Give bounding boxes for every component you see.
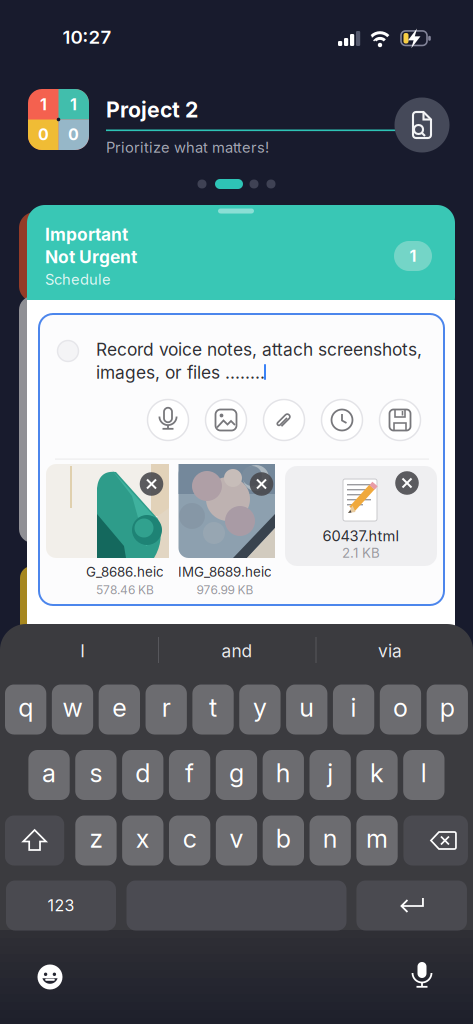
staticText: 60437.html bbox=[322, 527, 399, 545]
button[interactable]: I bbox=[23, 632, 143, 670]
button[interactable]: Attach image bbox=[205, 399, 246, 440]
staticText: 976.99 KB bbox=[196, 583, 253, 597]
staticText: q bbox=[18, 693, 33, 722]
staticText: r bbox=[162, 693, 171, 722]
button[interactable]: d bbox=[122, 750, 163, 800]
staticText: images, or files ........ bbox=[96, 362, 265, 382]
staticText: w bbox=[62, 693, 82, 722]
staticText: Schedule bbox=[45, 271, 111, 288]
staticText: 123 bbox=[47, 896, 74, 915]
staticText: b bbox=[276, 824, 291, 853]
staticText: Important bbox=[45, 224, 128, 244]
button[interactable]: m bbox=[356, 815, 398, 865]
button[interactable]: i bbox=[333, 684, 374, 734]
staticText: l bbox=[421, 758, 427, 788]
staticText: d bbox=[135, 758, 150, 788]
button[interactable]: l bbox=[403, 750, 444, 800]
staticText: 2.1 KB bbox=[342, 545, 380, 561]
staticText: g bbox=[229, 758, 244, 788]
button[interactable]: Record voice note bbox=[147, 399, 188, 440]
button[interactable]: u bbox=[286, 684, 327, 734]
button[interactable]: y bbox=[239, 684, 280, 734]
staticText: Not Urgent bbox=[45, 247, 137, 267]
button[interactable]: w bbox=[52, 684, 93, 734]
button[interactable]: x bbox=[122, 815, 163, 865]
staticText: IMG_8689.heic bbox=[178, 564, 272, 580]
staticText: f bbox=[185, 758, 194, 788]
staticText: 0 bbox=[68, 125, 79, 144]
button[interactable]: q bbox=[5, 684, 46, 734]
button[interactable]: n bbox=[310, 815, 351, 865]
button[interactable]: Set reminder bbox=[321, 399, 362, 440]
button[interactable]: Remove attachment bbox=[140, 472, 163, 496]
button[interactable]: and bbox=[177, 632, 297, 670]
button[interactable]: c bbox=[169, 815, 210, 865]
button[interactable]: Shift bbox=[5, 815, 64, 865]
button[interactable]: Search notes bbox=[394, 97, 449, 152]
button[interactable]: f bbox=[169, 750, 210, 800]
button[interactable]: b bbox=[263, 815, 304, 865]
staticText: Record voice notes, attach screenshots, bbox=[96, 339, 422, 359]
staticText: x bbox=[136, 824, 150, 853]
staticText: k bbox=[370, 758, 384, 788]
staticText: and bbox=[221, 641, 252, 661]
button[interactable]: o bbox=[380, 684, 421, 734]
button[interactable]: via bbox=[330, 632, 450, 670]
button[interactable]: Delete bbox=[403, 815, 468, 865]
staticText: 578.46 KB bbox=[96, 583, 154, 597]
staticText: j bbox=[327, 758, 333, 788]
staticText: a bbox=[42, 758, 56, 788]
button[interactable]: Remove attachment bbox=[395, 471, 419, 495]
staticText: h bbox=[276, 758, 291, 788]
staticText: s bbox=[89, 758, 102, 788]
staticText: z bbox=[89, 824, 102, 853]
staticText: e bbox=[112, 693, 126, 722]
button[interactable]: k bbox=[356, 750, 398, 800]
staticText: 10:27 bbox=[62, 26, 111, 48]
staticText: u bbox=[299, 693, 314, 722]
button[interactable]: Attach file bbox=[263, 399, 304, 440]
staticText: y bbox=[253, 693, 267, 722]
staticText: v bbox=[229, 824, 243, 853]
button[interactable]: z bbox=[75, 815, 117, 865]
button[interactable]: a bbox=[28, 750, 70, 800]
staticText: G_8686.heic bbox=[86, 564, 164, 580]
button[interactable]: t bbox=[192, 684, 234, 734]
button[interactable]: p bbox=[427, 684, 468, 734]
button[interactable]: v bbox=[216, 815, 257, 865]
button[interactable]: j bbox=[309, 750, 351, 800]
staticText: Prioritize what matters! bbox=[106, 139, 269, 156]
staticText: 1 bbox=[70, 95, 77, 114]
button[interactable]: Save bbox=[379, 399, 420, 440]
button[interactable]: Dictate bbox=[405, 959, 439, 993]
button[interactable]: g bbox=[216, 750, 257, 800]
button[interactable]: Emoji bbox=[33, 960, 67, 994]
button[interactable]: Remove attachment bbox=[250, 472, 273, 496]
button[interactable]: Return bbox=[356, 880, 467, 930]
staticText: 0 bbox=[38, 125, 49, 144]
button[interactable]: r bbox=[146, 684, 187, 734]
staticText: Project 2 bbox=[106, 97, 198, 122]
button[interactable]: s bbox=[75, 750, 116, 800]
staticText: I bbox=[80, 641, 85, 661]
staticText: p bbox=[440, 693, 455, 722]
button[interactable]: h bbox=[263, 750, 304, 800]
staticText: via bbox=[378, 641, 402, 661]
staticText: t bbox=[209, 693, 217, 722]
button[interactable]: Numbers bbox=[6, 880, 116, 930]
staticText: o bbox=[393, 693, 408, 722]
button[interactable]: e bbox=[99, 684, 140, 734]
staticText: c bbox=[183, 824, 197, 853]
staticText: m bbox=[366, 824, 388, 853]
staticText: i bbox=[351, 693, 357, 722]
staticText: 1 bbox=[409, 247, 416, 265]
staticText: 1 bbox=[40, 95, 47, 114]
staticText: n bbox=[323, 824, 338, 853]
